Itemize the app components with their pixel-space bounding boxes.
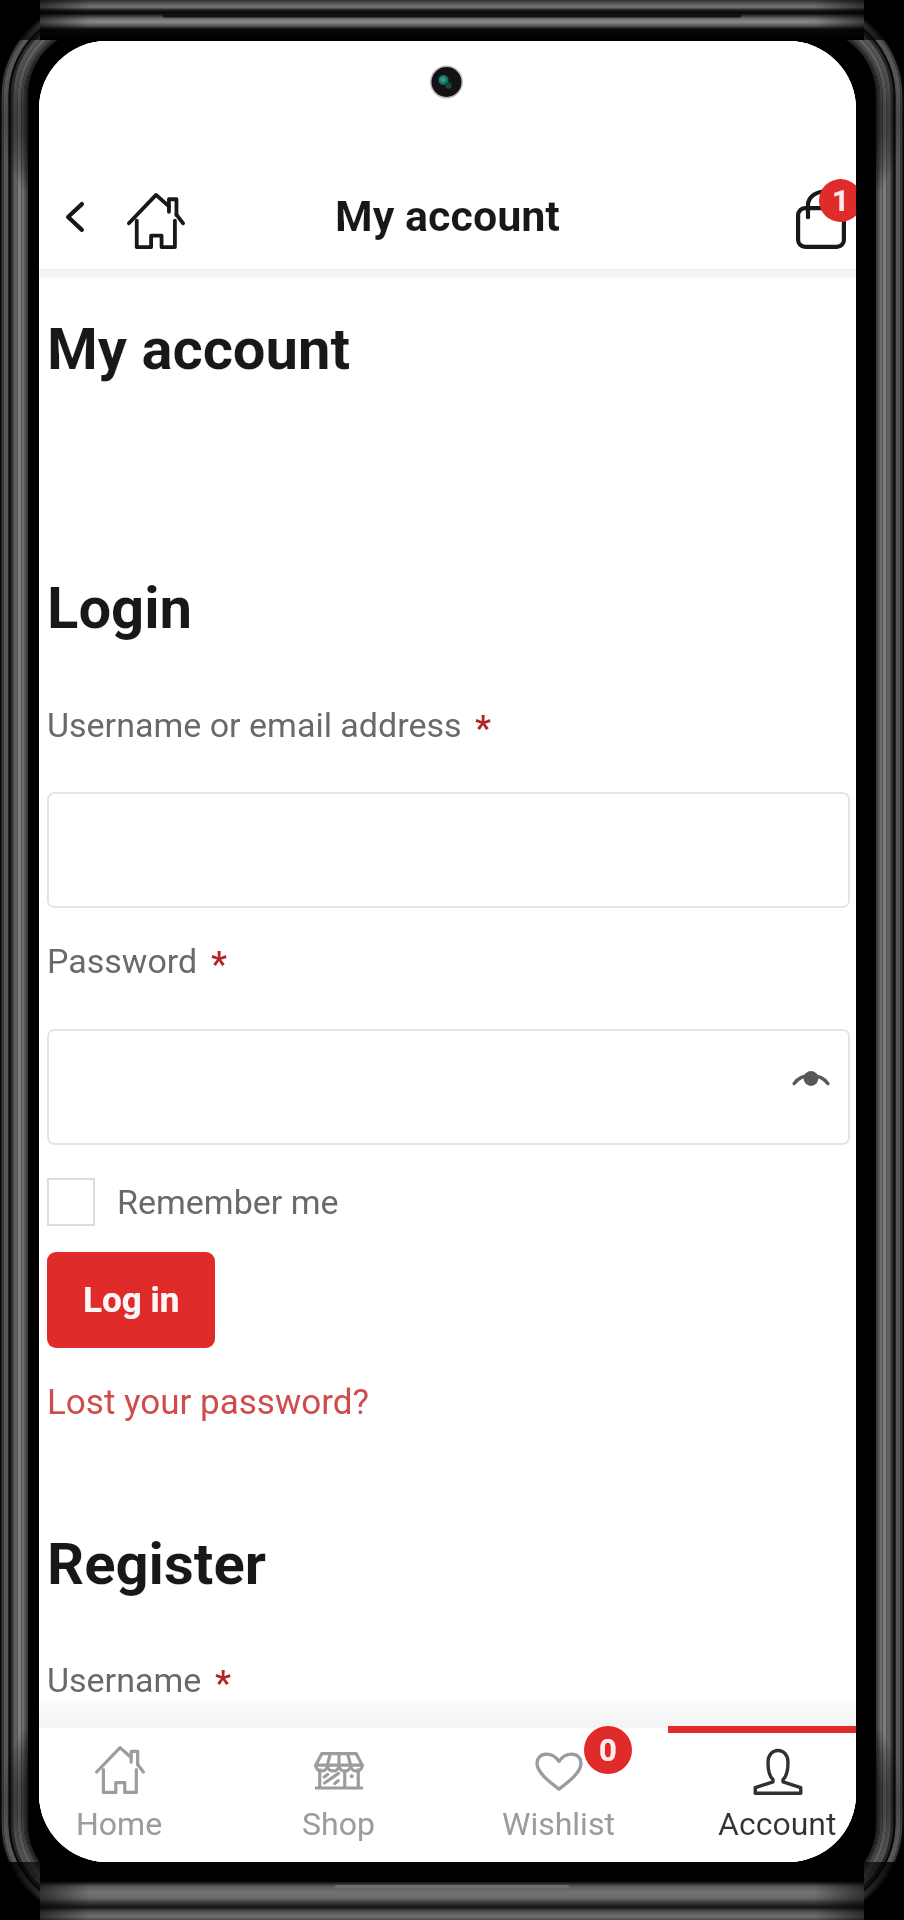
staticText: * xyxy=(211,944,227,985)
staticText: Password xyxy=(47,941,198,981)
staticText: Account xyxy=(718,1805,837,1843)
staticText: My account xyxy=(39,191,856,241)
staticText: 1 xyxy=(832,183,850,218)
button[interactable]: Shop xyxy=(229,1728,448,1862)
staticText: * xyxy=(215,1663,231,1704)
button[interactable]: Cart xyxy=(779,191,856,271)
button[interactable]: Log in xyxy=(47,1252,215,1348)
staticText: Home xyxy=(76,1805,163,1843)
staticText: Shop xyxy=(302,1805,375,1843)
button[interactable]: Remember me xyxy=(47,1178,339,1226)
button[interactable]: Show password xyxy=(774,1041,848,1115)
button[interactable]: Home xyxy=(39,1728,229,1862)
staticText: Login xyxy=(47,574,193,642)
staticText: Username or email address xyxy=(47,705,462,745)
button[interactable]: 0 xyxy=(449,1728,668,1862)
staticText: 0 xyxy=(599,1732,617,1768)
staticText: Lost your password? xyxy=(47,1382,370,1423)
staticText: Remember me xyxy=(117,1182,339,1222)
staticText: * xyxy=(475,708,491,749)
staticText: My account xyxy=(47,315,351,383)
staticText: Wishlist xyxy=(502,1805,615,1843)
button[interactable]: Account xyxy=(668,1728,856,1862)
staticText: Username xyxy=(47,1660,202,1700)
button[interactable]: Back xyxy=(44,186,106,248)
staticText: Register xyxy=(47,1530,266,1598)
button[interactable]: Home xyxy=(124,189,188,253)
button[interactable]: Lost your password? xyxy=(47,1382,370,1423)
staticText: Log in xyxy=(83,1280,180,1321)
button[interactable]: Show password xyxy=(47,1029,850,1145)
button[interactable] xyxy=(47,792,850,908)
